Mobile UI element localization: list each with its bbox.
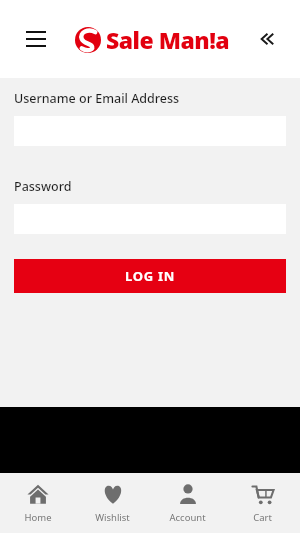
- button[interactable]: Sale Man!a: [75, 24, 230, 55]
- button[interactable]: Collapse: [250, 21, 286, 57]
- button[interactable]: Menu: [18, 21, 54, 57]
- staticText: LOG IN: [125, 267, 175, 285]
- staticText: Password: [14, 178, 72, 195]
- staticText: Account: [169, 511, 206, 524]
- button[interactable]: Wishlist: [75, 473, 150, 533]
- staticText: Username or Email Address: [14, 90, 180, 107]
- button[interactable]: Cart: [225, 473, 300, 533]
- button[interactable]: Home: [0, 473, 75, 533]
- button[interactable]: Account: [150, 473, 225, 533]
- staticText: Home: [24, 511, 52, 524]
- staticText: Sale Man!a: [106, 24, 230, 55]
- staticText: Cart: [253, 511, 272, 524]
- staticText: Wishlist: [95, 511, 130, 524]
- button[interactable]: LOG IN: [14, 259, 286, 293]
